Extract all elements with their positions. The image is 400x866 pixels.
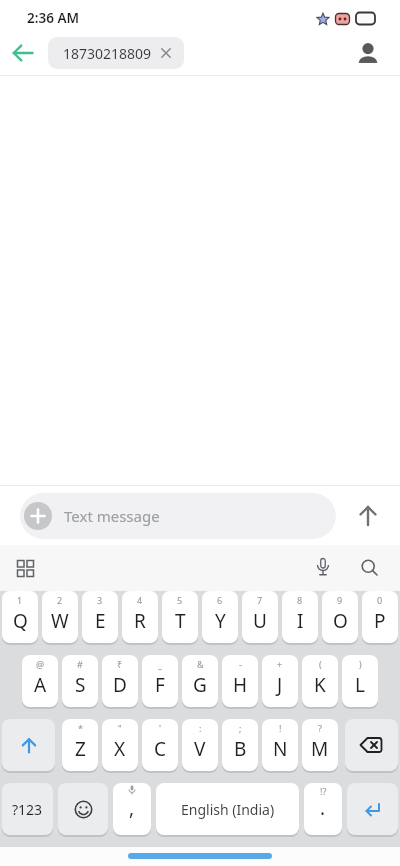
staticText: E — [95, 608, 106, 634]
button[interactable]: 7 — [242, 591, 278, 643]
button[interactable]: - — [222, 655, 258, 707]
staticText: _ — [158, 658, 162, 670]
staticText: U — [253, 608, 267, 634]
staticText: Z — [75, 736, 86, 762]
staticText: - — [239, 658, 242, 670]
staticText: 6 — [217, 594, 223, 606]
button[interactable]: Text message — [20, 493, 336, 539]
button[interactable]: 9 — [322, 591, 358, 643]
staticText: K — [314, 672, 326, 698]
button[interactable] — [315, 558, 331, 578]
staticText: V — [194, 736, 206, 762]
staticText: F — [155, 672, 165, 698]
staticText: ( — [319, 658, 322, 670]
staticText: Y — [215, 608, 226, 634]
staticText: O — [333, 608, 348, 634]
button[interactable] — [360, 558, 380, 578]
button[interactable]: !? — [304, 783, 342, 835]
staticText: 7 — [257, 594, 263, 606]
button[interactable]: ) — [342, 655, 378, 707]
staticText: 4 — [137, 594, 143, 606]
button[interactable]: : — [182, 719, 218, 771]
button[interactable]: ₹ — [102, 655, 138, 707]
staticText: ) — [359, 658, 362, 670]
staticText: 9 — [337, 594, 343, 606]
staticText: L — [355, 672, 365, 698]
button[interactable]: 2 — [42, 591, 78, 643]
staticText: 2 — [57, 594, 63, 606]
staticText: @ — [36, 658, 45, 670]
staticText: ; — [239, 722, 242, 734]
staticText: B — [234, 736, 247, 762]
staticText: & — [197, 658, 204, 670]
button[interactable]: ' — [142, 719, 178, 771]
button[interactable]: & — [182, 655, 218, 707]
staticText: 18730218809 — [63, 44, 152, 63]
staticText: : — [199, 722, 202, 734]
button[interactable] — [336, 486, 400, 545]
staticText: !? — [320, 785, 327, 797]
staticText: N — [273, 736, 288, 762]
staticText: C — [154, 736, 167, 762]
button[interactable]: ; — [222, 719, 258, 771]
staticText: . — [320, 795, 326, 821]
staticText: English (India) — [181, 800, 275, 819]
staticText: G — [193, 672, 207, 698]
staticText: 2:36 AM — [27, 9, 80, 27]
staticText: # — [77, 658, 83, 670]
staticText: P — [374, 608, 386, 634]
button[interactable]: ? — [302, 719, 338, 771]
button[interactable]: ?123 — [2, 783, 53, 835]
button[interactable]: 6 — [202, 591, 238, 643]
staticText: Q — [13, 608, 28, 634]
staticText: J — [277, 672, 283, 698]
button[interactable]: 3 — [82, 591, 118, 643]
button[interactable] — [347, 783, 398, 835]
button[interactable]: 4 — [122, 591, 158, 643]
staticText: S — [75, 672, 86, 698]
button[interactable] — [345, 719, 398, 771]
staticText: D — [113, 672, 127, 698]
button[interactable]: * — [62, 719, 98, 771]
staticText: R — [134, 608, 146, 634]
staticText: M — [311, 736, 329, 762]
button[interactable]: English (India) — [156, 783, 299, 835]
button[interactable] — [16, 559, 35, 578]
staticText: ₹ — [117, 658, 123, 670]
staticText: I — [297, 608, 304, 634]
staticText: Text message — [64, 506, 160, 526]
button[interactable] — [58, 783, 108, 835]
staticText: 3 — [97, 594, 103, 606]
button[interactable]: 5 — [162, 591, 198, 643]
button[interactable]: _ — [142, 655, 178, 707]
button[interactable] — [2, 719, 55, 771]
staticText: 1 — [17, 594, 23, 606]
staticText: H — [233, 672, 248, 698]
staticText: X — [114, 736, 126, 762]
staticText: + — [277, 658, 283, 670]
button[interactable]: ! — [262, 719, 298, 771]
staticText: A — [34, 672, 47, 698]
button[interactable]: , — [113, 783, 151, 835]
button[interactable]: 8 — [282, 591, 318, 643]
button[interactable]: " — [102, 719, 138, 771]
staticText: 5 — [177, 594, 183, 606]
button[interactable]: @ — [22, 655, 58, 707]
staticText: " — [118, 722, 122, 734]
staticText: 0 — [377, 594, 383, 606]
button[interactable]: ( — [302, 655, 338, 707]
staticText: ? — [318, 722, 322, 734]
staticText: W — [51, 608, 69, 634]
button[interactable] — [12, 44, 34, 62]
button[interactable]: 1 — [2, 591, 38, 643]
staticText: ! — [279, 722, 282, 734]
button[interactable]: 18730218809 — [48, 37, 184, 69]
staticText: , — [129, 795, 135, 821]
button[interactable]: + — [262, 655, 298, 707]
staticText: 8 — [297, 594, 303, 606]
button[interactable] — [356, 41, 380, 65]
staticText: ?123 — [12, 800, 43, 819]
button[interactable]: 0 — [362, 591, 398, 643]
staticText: * — [78, 722, 83, 734]
button[interactable]: # — [62, 655, 98, 707]
